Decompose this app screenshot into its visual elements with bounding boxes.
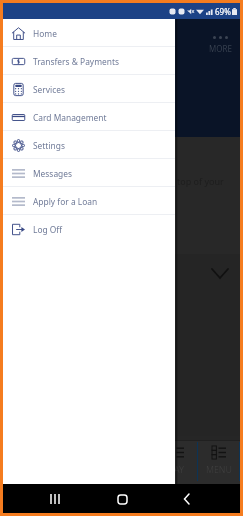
button[interactable]: Services	[3, 75, 175, 103]
staticText: Messages	[33, 168, 72, 179]
staticText: Apply for a Loan	[33, 196, 98, 207]
staticText: Services	[33, 84, 66, 95]
staticText: Card Management	[33, 112, 107, 123]
button[interactable]: Card Management	[3, 103, 175, 131]
button[interactable]: MENU	[198, 440, 239, 484]
button[interactable]: Log Off	[3, 215, 175, 243]
staticText: 69%	[215, 6, 231, 17]
staticText: Home	[33, 28, 57, 39]
button[interactable]: Recents	[44, 487, 68, 511]
staticText: Transfers & Payments	[33, 56, 119, 67]
button[interactable]: Settings	[3, 131, 175, 159]
button[interactable]: PAY	[156, 440, 197, 484]
staticText: PAY	[169, 464, 184, 476]
button[interactable]: Home	[3, 19, 175, 47]
button[interactable]: Apply for a Loan	[3, 187, 175, 215]
staticText: Settings	[33, 140, 65, 151]
button[interactable]: Messages	[3, 159, 175, 187]
staticText: Log Off	[33, 224, 63, 235]
button[interactable]: Transfers & Payments	[3, 47, 175, 75]
button[interactable]: Home	[110, 487, 134, 511]
staticText: MENU	[206, 464, 232, 476]
staticText: MORE	[209, 43, 232, 54]
button[interactable]: Back	[175, 487, 199, 511]
